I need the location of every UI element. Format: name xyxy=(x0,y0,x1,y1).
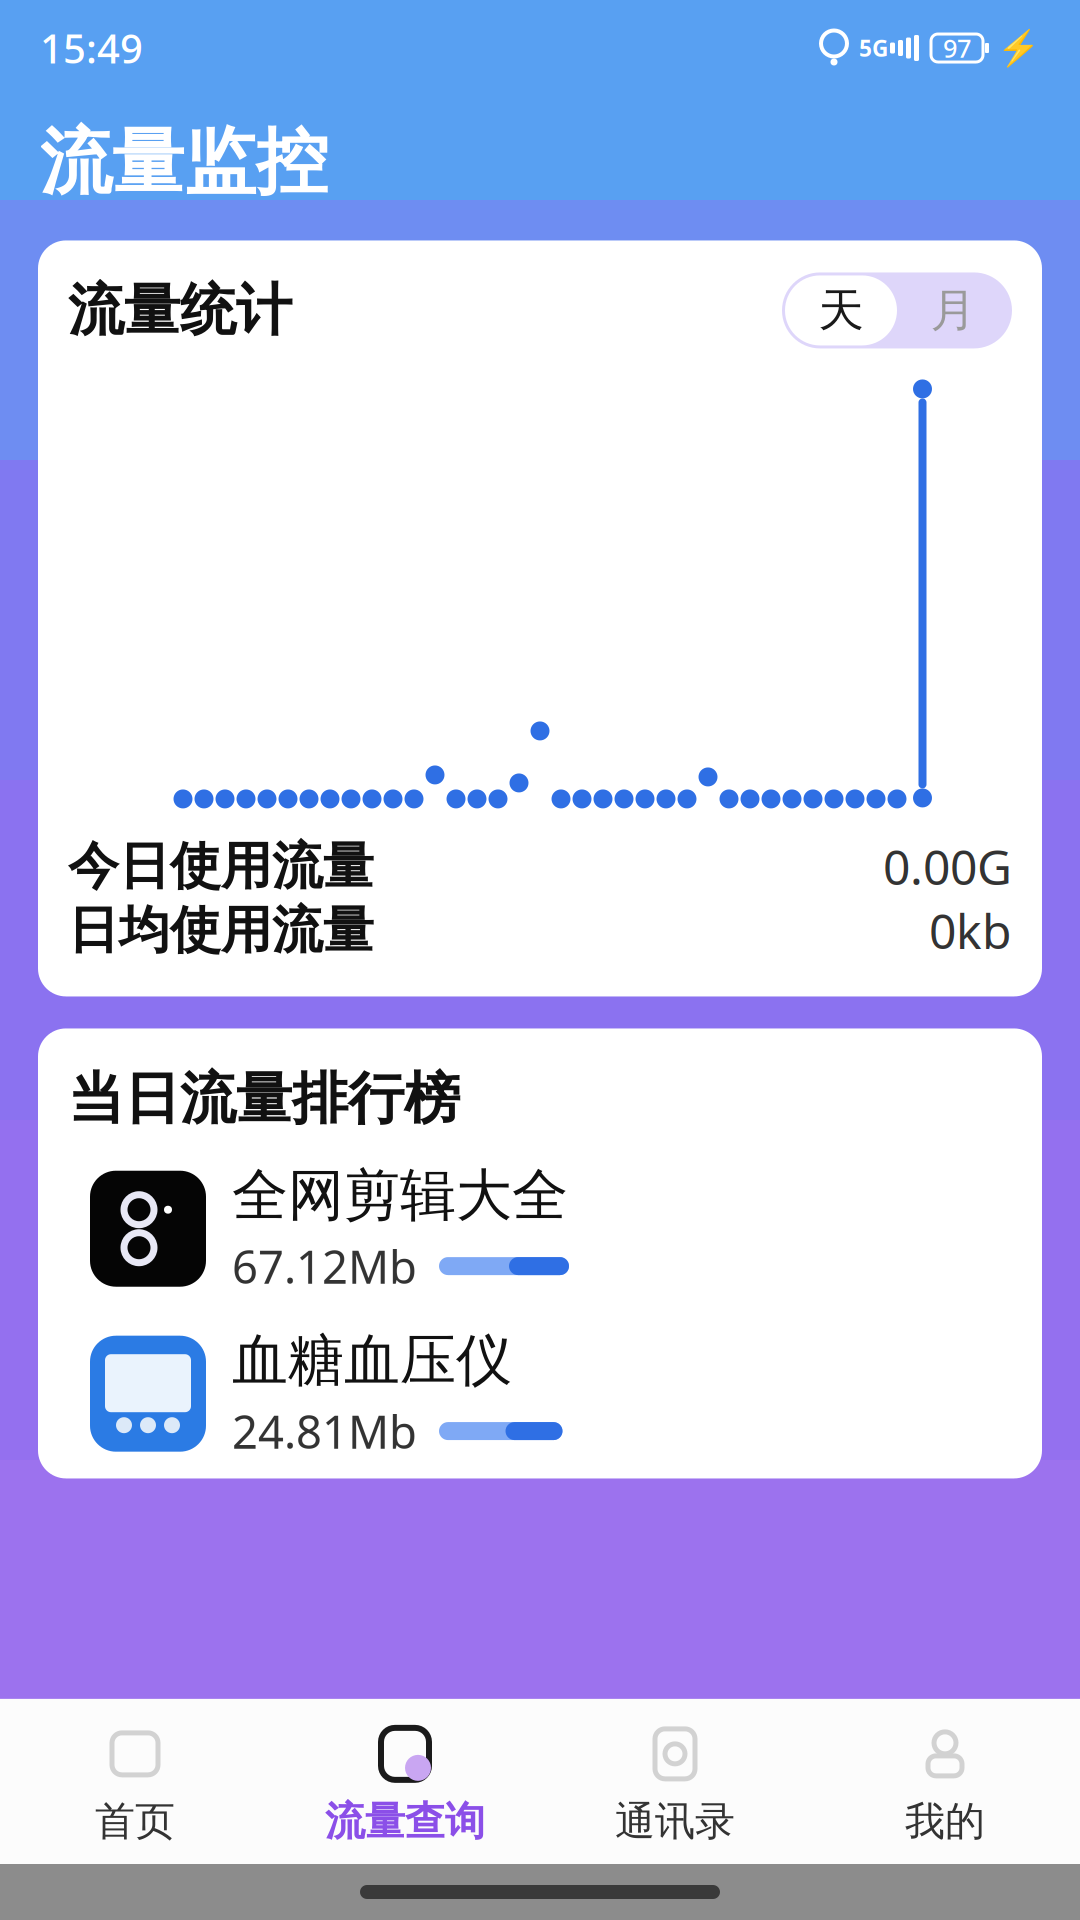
staticText: 流量查询 xyxy=(325,1797,485,1846)
staticText: 0.00G xyxy=(883,835,1012,898)
button[interactable]: 天 xyxy=(785,275,897,345)
staticText: 通讯录 xyxy=(615,1797,735,1846)
staticText: 97 xyxy=(943,31,971,65)
staticText: 全网剪辑大全 xyxy=(232,1161,568,1230)
staticText: 我的 xyxy=(905,1797,985,1846)
staticText: 24.81Mb xyxy=(232,1401,417,1461)
button[interactable]: 首页 xyxy=(0,1725,270,1846)
staticText: 血糖血压仪 xyxy=(232,1326,512,1395)
staticText: 日均使用流量 xyxy=(68,899,374,961)
button[interactable]: 通讯录 xyxy=(540,1725,810,1846)
staticText: 5G xyxy=(859,33,888,63)
button[interactable]: 流量查询 xyxy=(270,1725,540,1846)
staticText: 月 xyxy=(930,283,975,338)
button[interactable]: 全网剪辑大全 xyxy=(90,1151,990,1306)
staticText: 67.12Mb xyxy=(232,1236,417,1296)
staticText: 流量统计 xyxy=(68,276,292,345)
button[interactable]: 我的 xyxy=(810,1725,1080,1846)
staticText: 0kb xyxy=(929,899,1012,962)
staticText: 流量监控 xyxy=(40,118,328,206)
staticText: 15:49 xyxy=(40,21,143,74)
staticText: 天 xyxy=(818,283,863,338)
staticText: ⚡ xyxy=(997,28,1040,68)
staticText: 今日使用流量 xyxy=(68,835,374,897)
staticText: 当日流量排行榜 xyxy=(68,1064,460,1133)
button[interactable]: 月 xyxy=(897,275,1009,345)
staticText: 首页 xyxy=(95,1797,175,1846)
button[interactable]: 血糖血压仪 xyxy=(90,1316,990,1471)
